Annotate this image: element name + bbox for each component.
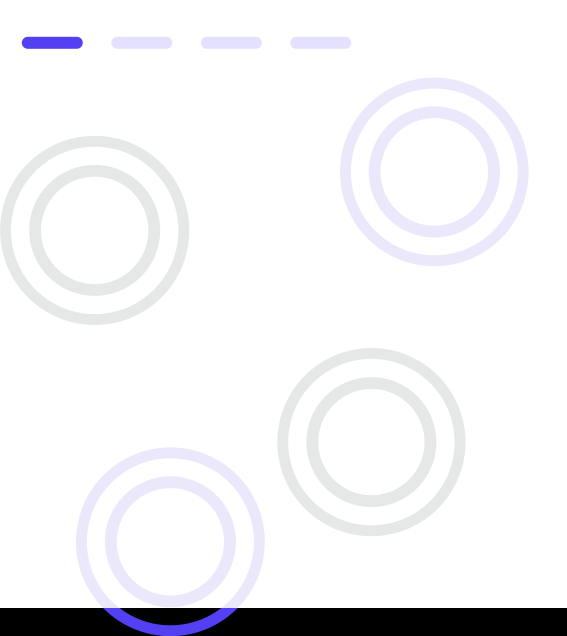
button[interactable]: Step 1 — [22, 37, 83, 49]
button[interactable]: Step 3 — [201, 37, 262, 49]
button[interactable]: Step 2 — [111, 37, 172, 49]
button[interactable]: Step 4 — [290, 37, 351, 49]
